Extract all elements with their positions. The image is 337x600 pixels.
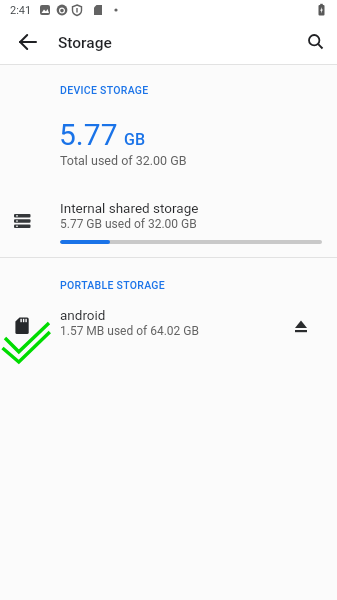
staticText: android bbox=[60, 307, 106, 323]
staticText: 1.57 MB used of 64.02 GB bbox=[60, 324, 199, 338]
staticText: PORTABLE STORAGE bbox=[60, 279, 166, 291]
button[interactable] bbox=[302, 28, 330, 56]
staticText: DEVICE STORAGE bbox=[60, 84, 149, 96]
staticText: Storage bbox=[58, 34, 112, 52]
button[interactable] bbox=[13, 28, 43, 58]
button[interactable]: Internal shared storage bbox=[0, 192, 337, 254]
staticText: 5.77 GB used of 32.00 GB bbox=[60, 217, 197, 231]
staticText: Internal shared storage bbox=[60, 200, 199, 216]
button[interactable] bbox=[287, 312, 315, 340]
staticText: 2:41 bbox=[10, 4, 32, 17]
button[interactable]: android bbox=[0, 300, 337, 348]
staticText: Total used of 32.00 GB bbox=[60, 153, 187, 168]
staticText: 5.77 bbox=[59, 117, 118, 152]
staticText: GB bbox=[124, 130, 145, 149]
